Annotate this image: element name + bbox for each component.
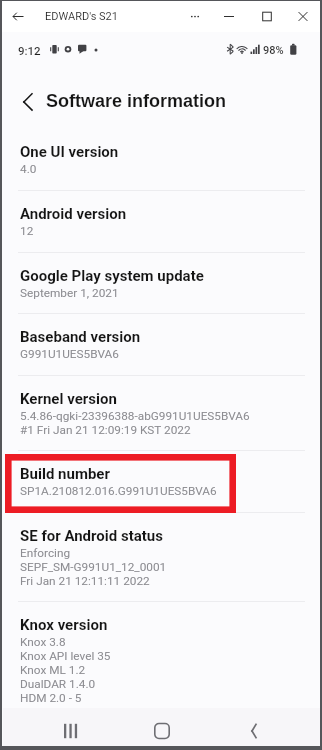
button[interactable]: Navigate up <box>14 88 42 116</box>
button[interactable]: SE for Android status <box>3 513 320 601</box>
staticText: G991U1UES5BVA6 <box>20 347 119 361</box>
button[interactable]: Maximize <box>252 1 282 32</box>
staticText: Kernel version <box>20 390 117 408</box>
button[interactable]: Android version <box>3 191 320 252</box>
staticText: SEPF_SM-G991U1_12_0001 <box>20 560 167 574</box>
staticText: 4.0 <box>20 162 37 176</box>
button[interactable]: Home <box>132 708 192 746</box>
button[interactable]: More options <box>180 1 210 32</box>
staticText: 98% <box>263 44 284 57</box>
staticText: Build number <box>20 465 110 483</box>
button[interactable]: Recent apps <box>37 708 97 746</box>
staticText: 5.4.86-qgki-23396388-abG991U1UES5BVA6 <box>20 409 250 423</box>
staticText: 12 <box>20 224 34 238</box>
staticText: SP1A.210812.016.G991U1UES5BVA6 <box>20 484 217 498</box>
button[interactable]: Build number <box>3 451 320 512</box>
staticText: Knox API level 35 <box>20 649 111 663</box>
staticText: #1 Fri Jan 21 12:09:19 KST 2022 <box>20 423 191 437</box>
staticText: Knox 3.8 <box>20 635 66 649</box>
button[interactable]: Baseband version <box>3 314 320 375</box>
staticText: Software information <box>46 91 227 111</box>
staticText: Enforcing <box>20 546 71 560</box>
staticText: One UI version <box>20 143 119 161</box>
staticText: SE for Android status <box>20 527 163 545</box>
staticText: Baseband version <box>20 328 141 346</box>
button[interactable]: Minimize <box>214 1 244 32</box>
staticText: Knox version <box>20 616 108 634</box>
button[interactable]: Knox version <box>3 602 320 712</box>
staticText: Android version <box>20 205 127 223</box>
button[interactable]: One UI version <box>3 129 320 190</box>
staticText: 9:12 <box>18 44 41 57</box>
staticText: Google Play system update <box>20 267 204 285</box>
staticText: DualDAR 1.4.0 <box>20 677 96 691</box>
button[interactable]: Google Play system update <box>3 253 320 313</box>
staticText: Fri Jan 21 12:11:11 2022 <box>20 574 150 588</box>
button[interactable]: Kernel version <box>3 376 320 450</box>
staticText: Knox ML 1.2 <box>20 663 86 677</box>
button[interactable]: Close <box>288 1 318 32</box>
staticText: September 1, 2021 <box>20 286 119 300</box>
staticText: EDWARD's S21 <box>45 10 118 23</box>
button[interactable]: Back <box>5 1 31 32</box>
staticText: HDM 2.0 - 5 <box>20 691 82 705</box>
button[interactable]: Back <box>226 708 286 746</box>
